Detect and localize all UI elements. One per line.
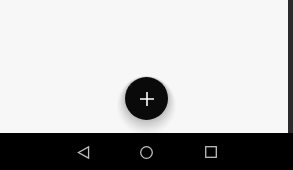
button[interactable]: Home	[129, 135, 163, 169]
button[interactable]: Add	[125, 77, 168, 120]
button[interactable]: Back	[66, 135, 100, 169]
button[interactable]: Recent apps	[194, 135, 228, 169]
